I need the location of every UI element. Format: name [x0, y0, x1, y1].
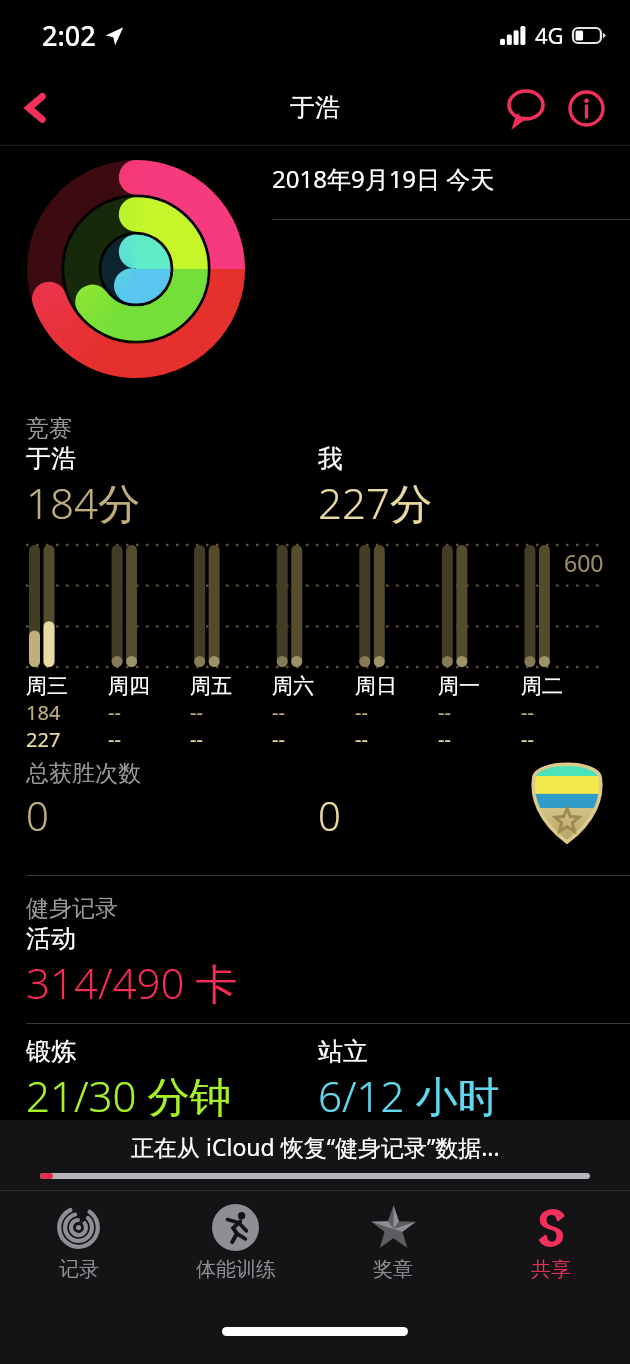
- staticText: --: [355, 726, 368, 753]
- staticText: 于浩: [290, 92, 340, 123]
- staticText: --: [272, 726, 285, 753]
- staticText: 于浩: [26, 443, 76, 474]
- staticText: --: [438, 699, 451, 726]
- staticText: 活动: [26, 923, 76, 954]
- staticText: 周六: [272, 673, 314, 699]
- staticText: 奖章: [373, 1257, 413, 1282]
- staticText: --: [521, 726, 534, 753]
- staticText: 我: [318, 443, 343, 474]
- staticText: 总获胜次数: [26, 759, 141, 788]
- staticText: 0: [318, 788, 341, 842]
- staticText: 周日: [355, 673, 397, 699]
- staticText: 周五: [190, 673, 232, 699]
- button[interactable]: 记录: [0, 1191, 157, 1311]
- staticText: 227: [26, 726, 61, 753]
- button[interactable]: Message: [498, 80, 554, 136]
- staticText: --: [190, 726, 203, 753]
- button[interactable]: 共享: [472, 1191, 630, 1311]
- staticText: 正在从 iCloud 恢复“健身记录”数据...: [131, 1131, 500, 1162]
- staticText: --: [190, 699, 203, 726]
- staticText: 健身记录: [26, 894, 118, 923]
- staticText: 周三: [26, 673, 68, 699]
- staticText: 6/12 小时: [318, 1067, 500, 1124]
- staticText: --: [272, 699, 285, 726]
- staticText: 227分: [318, 474, 432, 531]
- button[interactable]: Back: [8, 80, 64, 136]
- staticText: --: [108, 699, 121, 726]
- staticText: 314/490 卡: [26, 954, 238, 1011]
- staticText: 周二: [521, 673, 563, 699]
- staticText: 共享: [531, 1257, 571, 1282]
- staticText: 4G: [535, 20, 564, 50]
- staticText: 600: [564, 547, 604, 578]
- staticText: 站立: [318, 1036, 368, 1067]
- staticText: 184分: [26, 474, 140, 531]
- staticText: 184: [26, 699, 61, 726]
- staticText: --: [521, 699, 534, 726]
- button[interactable]: 体能训练: [157, 1191, 314, 1311]
- staticText: --: [108, 726, 121, 753]
- staticText: 周四: [108, 673, 150, 699]
- button[interactable]: 奖章: [314, 1191, 472, 1311]
- staticText: 记录: [59, 1257, 99, 1282]
- staticText: 周一: [438, 673, 480, 699]
- staticText: 0: [26, 788, 49, 842]
- staticText: --: [438, 726, 451, 753]
- staticText: --: [355, 699, 368, 726]
- button[interactable]: Info: [558, 80, 614, 136]
- staticText: 2018年9月19日 今天: [272, 162, 495, 195]
- staticText: 21/30 分钟: [26, 1067, 232, 1124]
- staticText: 体能训练: [196, 1257, 276, 1282]
- staticText: 竞赛: [26, 414, 72, 443]
- staticText: 2:02: [42, 17, 96, 54]
- staticText: 锻炼: [26, 1036, 76, 1067]
